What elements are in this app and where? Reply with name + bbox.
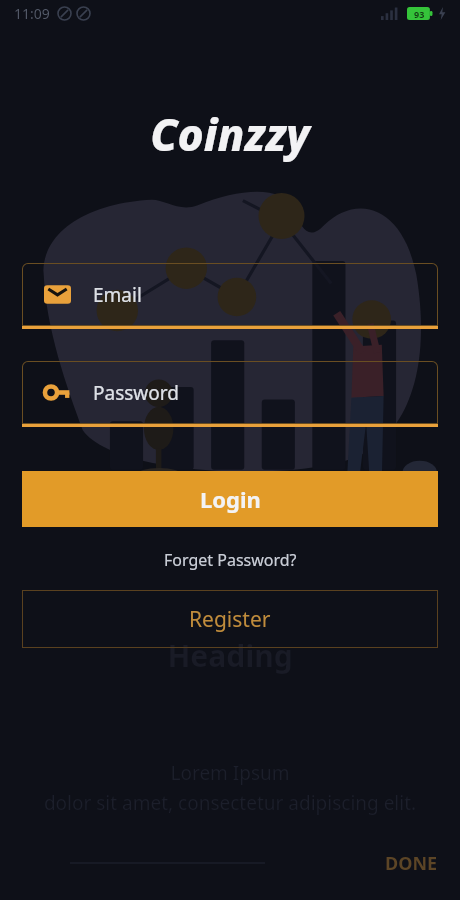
- staticText: Email: [93, 282, 142, 308]
- staticText: 11:09: [14, 4, 50, 23]
- button[interactable]: Forget Password?: [0, 549, 460, 571]
- button[interactable]: Email: [22, 263, 438, 329]
- staticText: dolor sit amet, consectetur adipiscing e…: [0, 790, 460, 816]
- staticText: 93: [414, 8, 425, 20]
- staticText: Password: [93, 380, 179, 406]
- button[interactable]: Register: [22, 590, 438, 648]
- other: Password: [44, 379, 71, 406]
- button[interactable]: DONE: [385, 851, 438, 876]
- button[interactable]: Password: [22, 361, 438, 427]
- staticText: Coinzzy: [0, 104, 460, 164]
- other: Email: [44, 281, 71, 308]
- staticText: Forget Password?: [164, 549, 297, 571]
- button[interactable]: Login: [22, 471, 438, 527]
- staticText: Heading: [0, 635, 460, 676]
- staticText: DONE: [385, 851, 438, 876]
- staticText: Login: [200, 484, 261, 514]
- staticText: Register: [189, 605, 271, 634]
